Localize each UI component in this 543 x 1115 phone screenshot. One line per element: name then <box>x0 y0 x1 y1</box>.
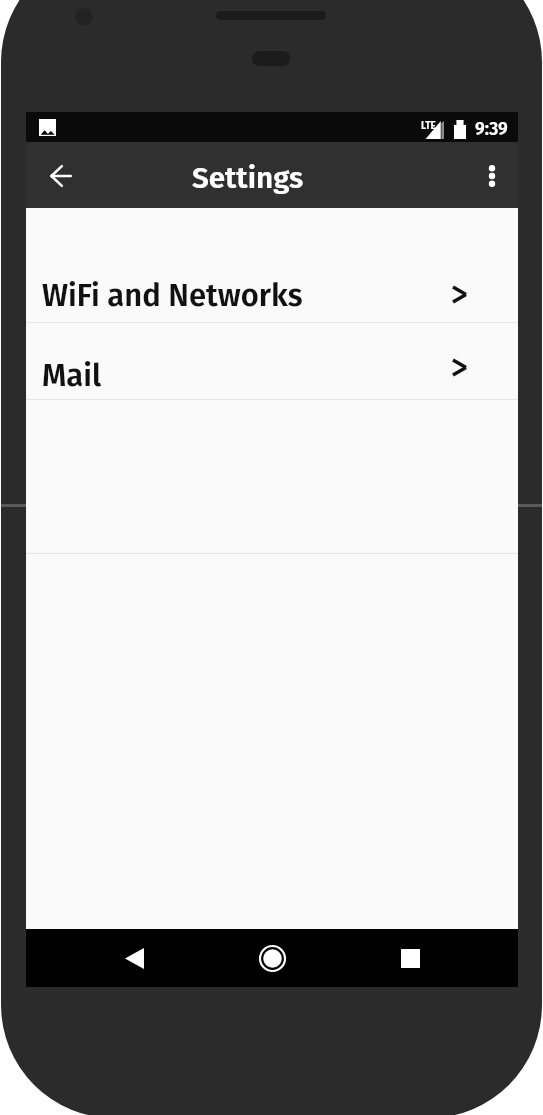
staticText: LTE <box>421 120 436 132</box>
button[interactable]: Recent apps <box>386 934 434 982</box>
button[interactable]: Navigate up <box>37 152 85 200</box>
button[interactable]: WiFi and Networks <box>26 246 518 323</box>
staticText: Mail <box>42 357 102 394</box>
staticText: WiFi and Networks <box>42 277 303 314</box>
button[interactable]: More options <box>468 152 516 200</box>
button[interactable]: Back <box>110 934 158 982</box>
button[interactable]: Mail <box>26 323 518 400</box>
staticText: Settings <box>192 160 304 196</box>
button[interactable]: Home <box>248 934 296 982</box>
staticText: 9:39 <box>475 119 508 140</box>
